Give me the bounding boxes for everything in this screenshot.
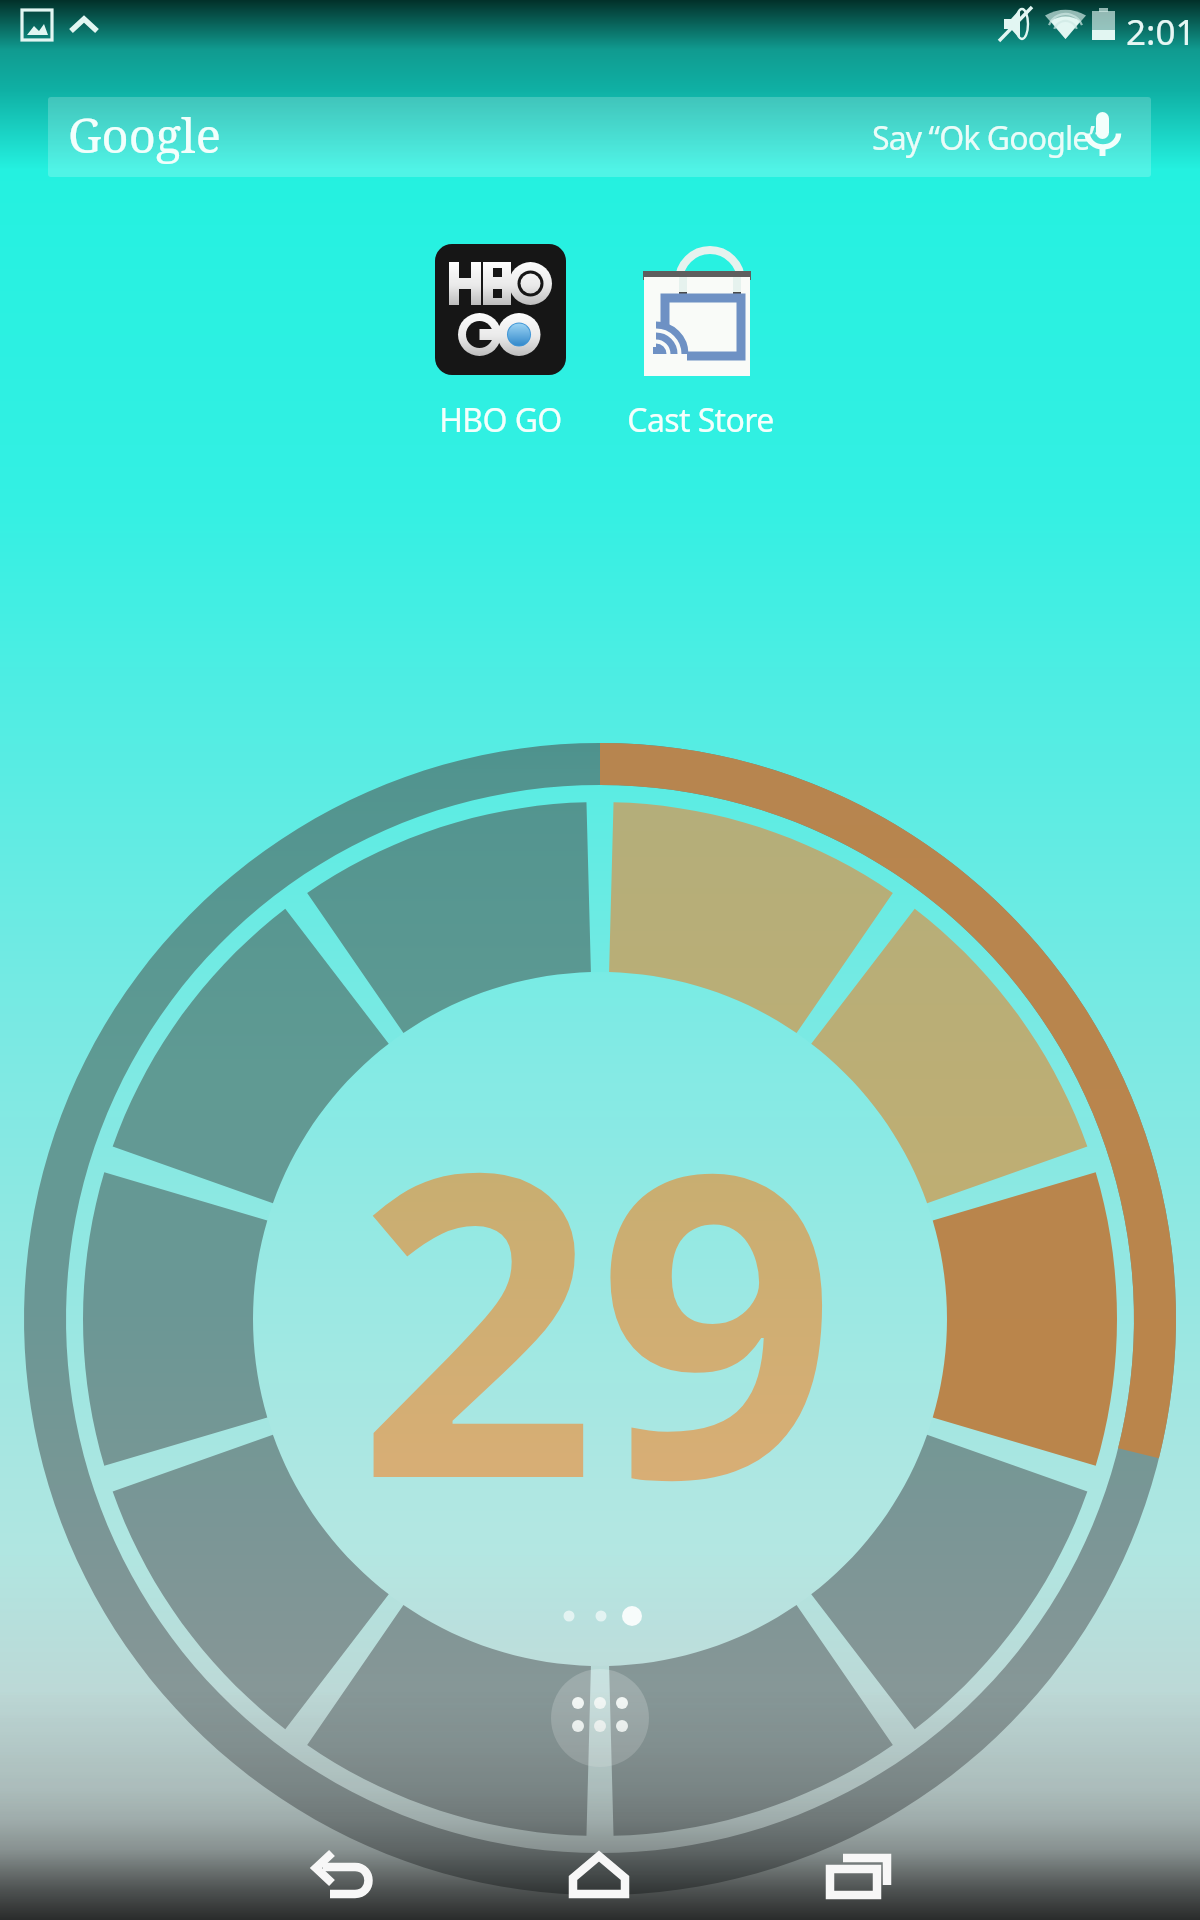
button[interactable]: Back: [283, 1830, 403, 1918]
button[interactable]: All apps: [551, 1669, 649, 1767]
button[interactable]: Home: [540, 1830, 660, 1918]
staticText: 2:01: [1126, 8, 1196, 56]
button[interactable]: HBO GO: [420, 244, 581, 442]
staticText: Google: [68, 103, 221, 167]
button[interactable]: Cast Store: [620, 244, 781, 442]
staticText: HBO GO: [439, 398, 562, 442]
staticText: Cast Store: [627, 398, 774, 442]
button[interactable]: Google: [48, 97, 1151, 177]
staticText: 29: [0, 1028, 1197, 1600]
button[interactable]: Recents: [800, 1830, 920, 1918]
staticText: Say “Ok Google”: [872, 116, 1100, 160]
